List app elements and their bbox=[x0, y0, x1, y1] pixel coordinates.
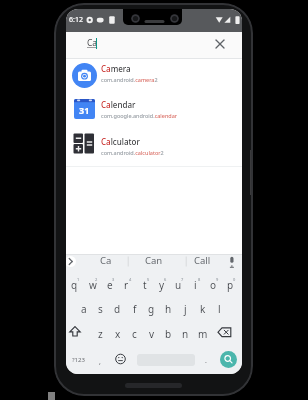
button[interactable]: Can bbox=[139, 253, 169, 267]
staticText: l bbox=[218, 302, 221, 316]
staticText: f bbox=[133, 302, 137, 316]
staticText: 6:12 bbox=[69, 15, 83, 25]
button[interactable]: d bbox=[109, 302, 126, 316]
staticText: e bbox=[107, 278, 113, 292]
button[interactable]: n bbox=[177, 327, 194, 341]
button[interactable]: r bbox=[118, 278, 135, 292]
button[interactable]: l bbox=[211, 302, 228, 316]
staticText: 1 bbox=[77, 277, 80, 282]
staticText: 8 bbox=[198, 277, 201, 282]
button[interactable]: Calculator bbox=[66, 133, 241, 166]
staticText: i bbox=[194, 278, 197, 292]
staticText: n bbox=[182, 327, 189, 341]
staticText: g bbox=[148, 302, 155, 316]
staticText: m bbox=[198, 327, 208, 341]
button[interactable]: ?123 bbox=[69, 353, 87, 367]
button[interactable]: p bbox=[222, 278, 239, 292]
button[interactable]: h bbox=[160, 302, 177, 316]
staticText: Camera bbox=[101, 63, 131, 74]
button[interactable]: g bbox=[143, 302, 160, 316]
staticText: u bbox=[175, 278, 182, 292]
button[interactable]: m bbox=[194, 327, 211, 341]
button[interactable]: a bbox=[75, 302, 92, 316]
staticText: 6 bbox=[164, 277, 167, 282]
staticText: r bbox=[124, 278, 129, 292]
button[interactable]: w bbox=[84, 278, 101, 292]
staticText: p bbox=[227, 278, 234, 292]
staticText: com.android.calculator2 bbox=[101, 149, 164, 156]
staticText: c bbox=[132, 327, 137, 341]
staticText: s bbox=[98, 302, 103, 316]
staticText: 9 bbox=[216, 277, 219, 282]
staticText: d bbox=[114, 302, 121, 316]
button[interactable]: 31 bbox=[66, 96, 241, 129]
staticText: z bbox=[98, 327, 103, 341]
staticText: b bbox=[165, 327, 172, 341]
button[interactable]: s bbox=[92, 302, 109, 316]
staticText: y bbox=[159, 278, 165, 292]
staticText: Calculator bbox=[101, 136, 140, 147]
staticText: j bbox=[184, 302, 187, 316]
staticText: x bbox=[115, 327, 121, 341]
staticText: com.google.android.calendar bbox=[101, 112, 178, 119]
button[interactable]: o bbox=[205, 278, 222, 292]
staticText: Can bbox=[145, 254, 163, 267]
staticText: o bbox=[210, 278, 217, 292]
button[interactable]: t bbox=[136, 278, 153, 292]
button[interactable]: e bbox=[101, 278, 118, 292]
staticText: 2 bbox=[95, 277, 98, 282]
staticText: Call bbox=[194, 254, 211, 267]
staticText: Ca bbox=[100, 254, 112, 267]
button[interactable] bbox=[66, 256, 76, 267]
staticText: w bbox=[89, 278, 97, 292]
button[interactable]: i bbox=[187, 278, 204, 292]
button[interactable]: j bbox=[177, 302, 194, 316]
staticText: . bbox=[205, 356, 207, 366]
staticText: h bbox=[165, 302, 172, 316]
button[interactable]: z bbox=[92, 327, 109, 341]
staticText: 0 bbox=[233, 277, 236, 282]
button[interactable]: q bbox=[66, 278, 83, 292]
button[interactable]: Call bbox=[187, 253, 217, 267]
staticText: k bbox=[200, 302, 206, 316]
button[interactable]: b bbox=[160, 327, 177, 341]
button[interactable] bbox=[216, 325, 233, 340]
button[interactable] bbox=[67, 324, 83, 339]
staticText: v bbox=[149, 327, 155, 341]
staticText: 31 bbox=[79, 104, 90, 116]
button[interactable]: Camera bbox=[66, 60, 241, 93]
button[interactable]: f bbox=[126, 302, 143, 316]
button[interactable]: k bbox=[194, 302, 211, 316]
staticText: ?123 bbox=[72, 356, 85, 364]
button[interactable]: c bbox=[126, 327, 143, 341]
staticText: 4 bbox=[129, 277, 132, 282]
staticText: a bbox=[81, 302, 87, 316]
button[interactable]: v bbox=[143, 327, 160, 341]
staticText: com.android.camera2 bbox=[101, 76, 158, 83]
staticText: Calendar bbox=[101, 99, 136, 110]
button[interactable] bbox=[220, 351, 237, 368]
button[interactable] bbox=[114, 352, 127, 366]
button[interactable] bbox=[213, 37, 227, 51]
staticText: t bbox=[143, 278, 147, 292]
button[interactable]: u bbox=[170, 278, 187, 292]
staticText: Ca bbox=[87, 37, 98, 49]
staticText: 7 bbox=[181, 277, 184, 282]
staticText: , bbox=[99, 357, 101, 367]
button[interactable]: x bbox=[109, 327, 126, 341]
button[interactable]: y bbox=[153, 278, 170, 292]
staticText: 5 bbox=[147, 277, 150, 282]
staticText: 3 bbox=[112, 277, 115, 282]
button[interactable]: Ca bbox=[91, 253, 121, 267]
staticText: q bbox=[71, 278, 78, 292]
